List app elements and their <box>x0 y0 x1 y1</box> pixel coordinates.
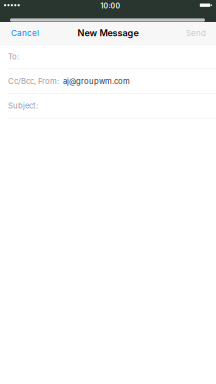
button[interactable]: To: <box>0 45 216 69</box>
button[interactable]: Subject: <box>0 94 216 118</box>
button[interactable]: Send <box>176 23 216 43</box>
button[interactable]: Cancel <box>0 23 50 43</box>
staticText: New Message <box>77 27 138 38</box>
staticText: Subject: <box>8 101 38 110</box>
staticText: Cc/Bcc, From: <box>8 76 59 86</box>
staticText: aj@groupwm.com <box>59 76 130 86</box>
staticText: Send <box>186 28 206 38</box>
button[interactable]: Cc/Bcc, From: <box>0 69 216 93</box>
staticText: To: <box>8 52 19 61</box>
staticText: 10:00 <box>101 2 121 10</box>
staticText: Cancel <box>11 28 39 38</box>
